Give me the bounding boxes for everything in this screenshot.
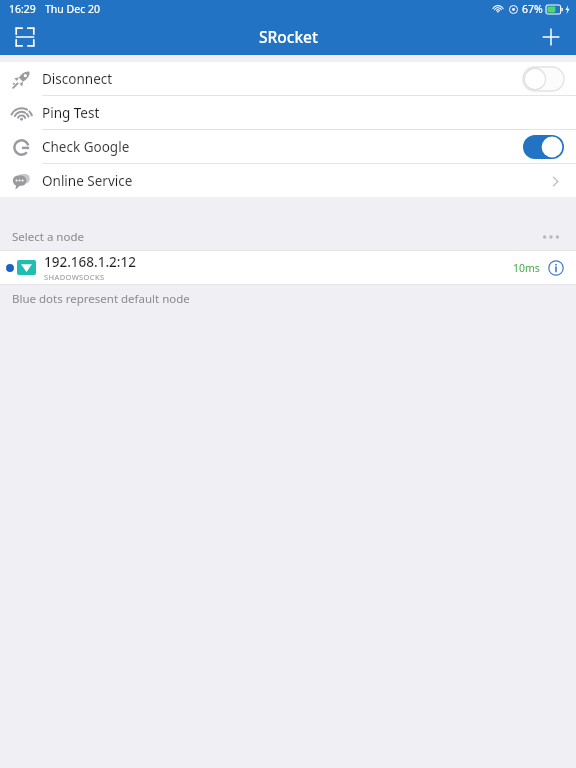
staticText: SRocket — [259, 26, 318, 47]
staticText: Select a node — [12, 229, 84, 245]
staticText: Online Service — [42, 172, 133, 190]
staticText: Check Google — [42, 138, 130, 156]
staticText: Blue dots represent default node — [12, 291, 190, 307]
button[interactable]: Ping Test — [0, 96, 576, 130]
button[interactable]: 192.168.1.2:12 — [0, 251, 576, 284]
button[interactable]: More options — [538, 226, 564, 248]
button[interactable]: Scan QR code — [8, 20, 42, 54]
other: Open — [546, 172, 564, 190]
button[interactable]: Disconnect — [0, 62, 576, 96]
button[interactable]: Add node — [534, 20, 568, 54]
staticText: 16:29 — [9, 2, 36, 16]
staticText: 10ms — [513, 261, 540, 275]
button[interactable]: Node info — [546, 258, 566, 278]
staticText: Thu Dec 20 — [45, 2, 100, 16]
staticText: Ping Test — [42, 104, 100, 122]
button[interactable]: Off — [523, 67, 564, 91]
staticText: 67% — [522, 2, 543, 16]
staticText: 192.168.1.2:12 — [44, 253, 136, 271]
button[interactable]: Check Google — [0, 130, 576, 164]
button[interactable]: Online Service — [0, 164, 576, 197]
staticText: SHADOWSOCKS — [44, 272, 105, 282]
button[interactable]: On — [523, 135, 564, 159]
staticText: Disconnect — [42, 70, 113, 88]
